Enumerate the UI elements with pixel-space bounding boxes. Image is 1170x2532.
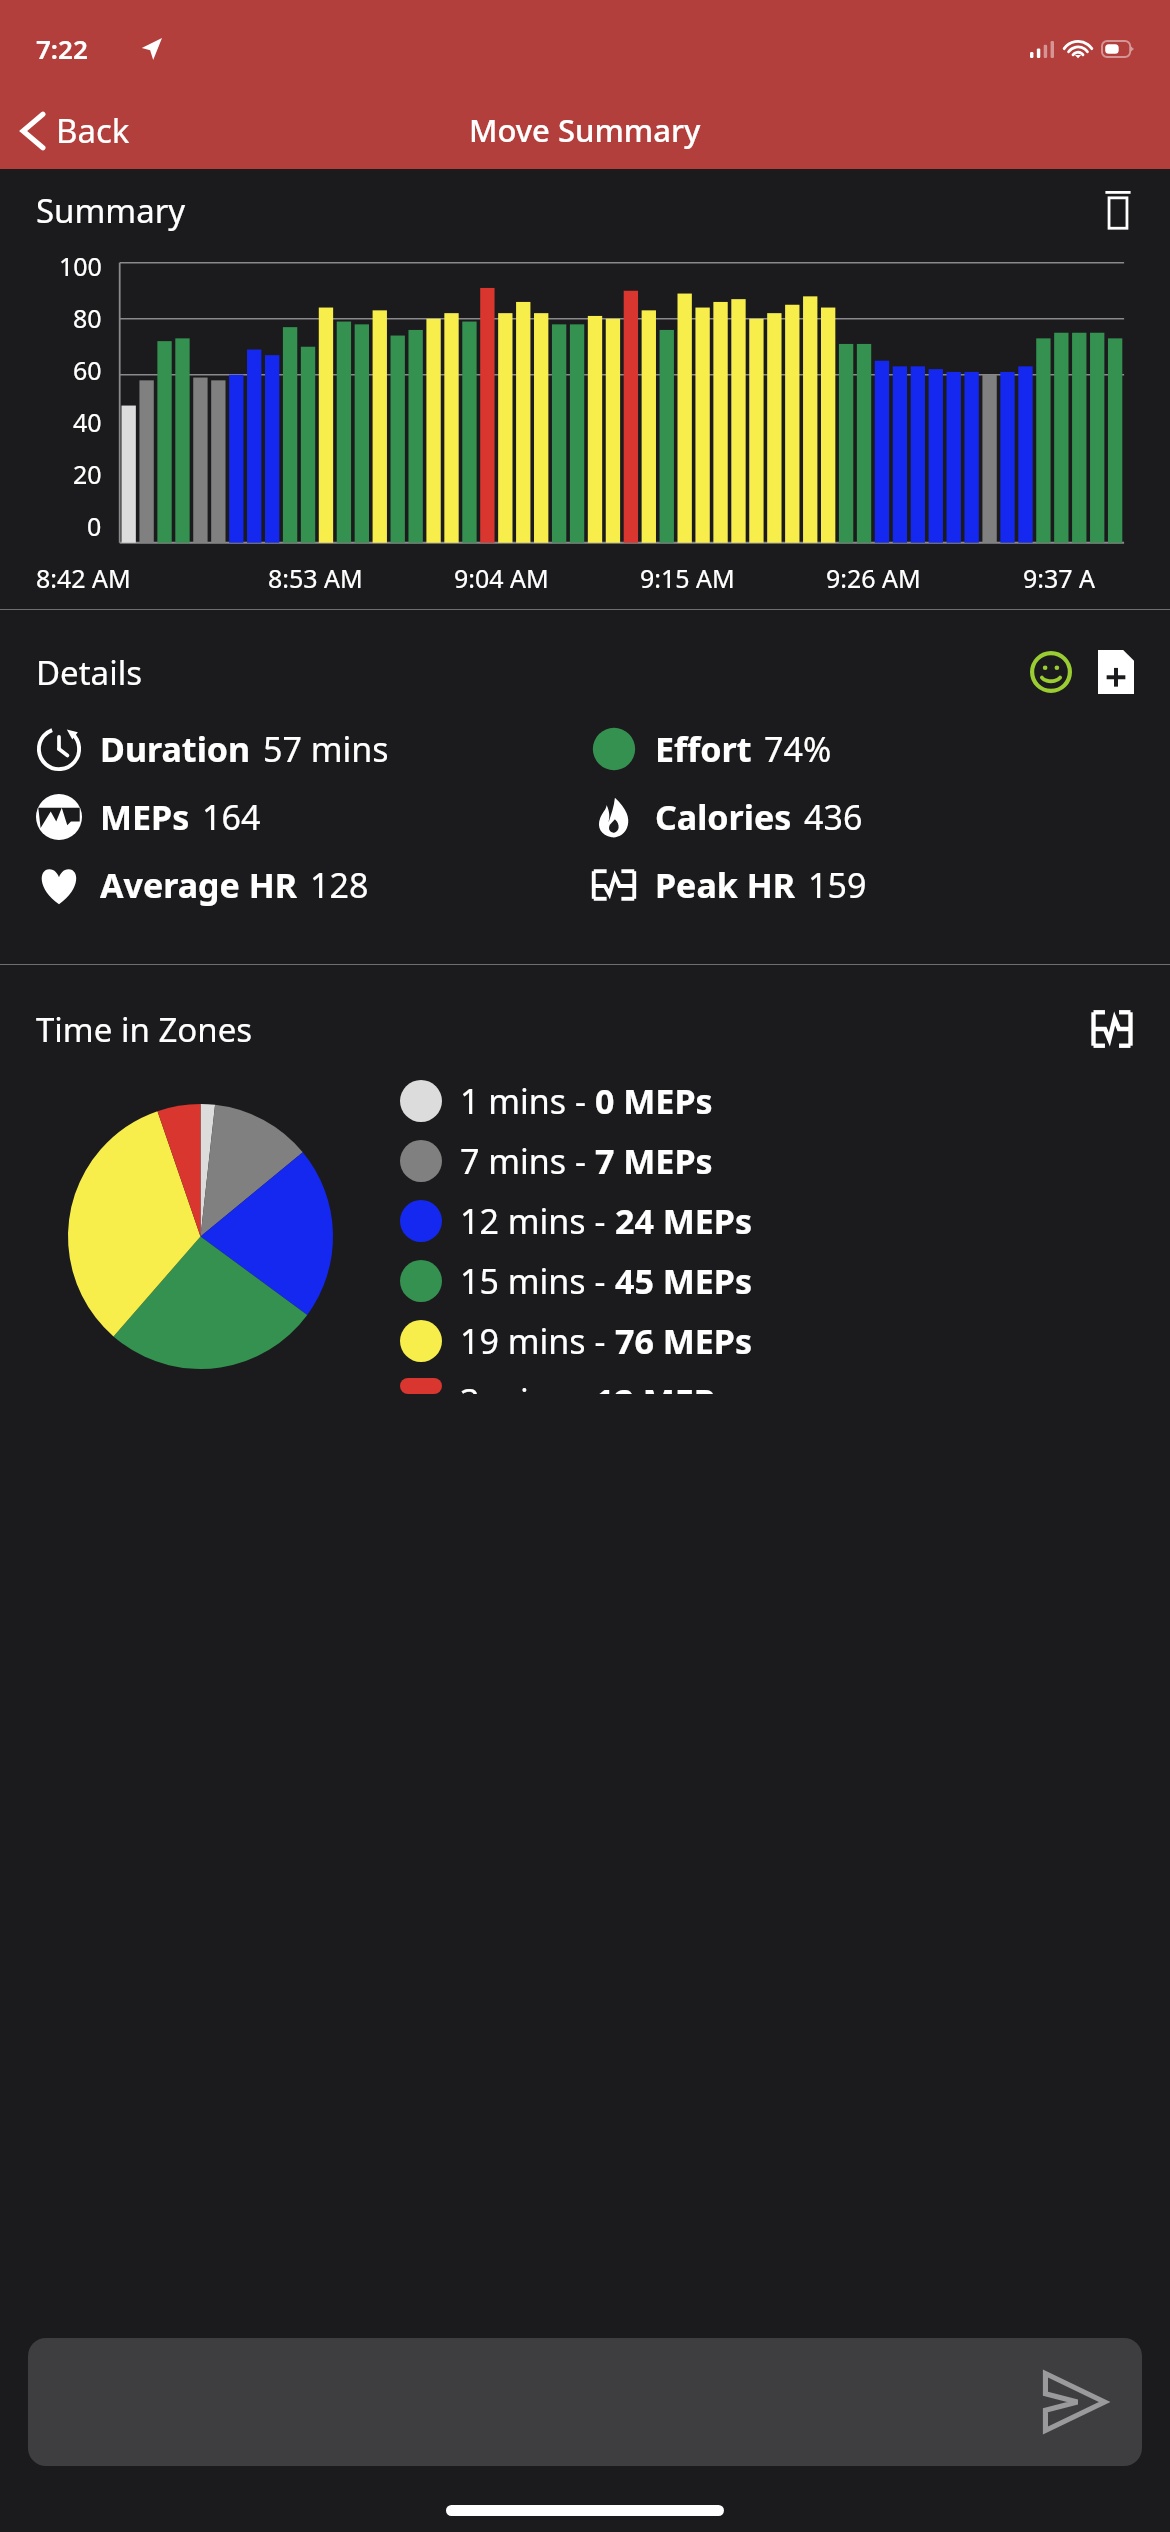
button[interactable]: Duration <box>0 726 585 772</box>
staticText: Back <box>56 108 130 153</box>
staticText: 12 mins - <box>460 1198 615 1244</box>
staticText: Summary <box>36 188 186 233</box>
button[interactable]: Average HR <box>0 862 585 908</box>
staticText: 40 <box>73 405 102 439</box>
staticText: 74% <box>764 726 832 772</box>
staticText: 80 <box>73 301 102 335</box>
staticText: 7 mins - <box>460 1138 595 1184</box>
staticText: 7 MEPs <box>595 1138 713 1184</box>
staticText: 0 MEPs <box>595 1078 713 1124</box>
staticText: MEPs <box>100 794 190 840</box>
button[interactable]: 15 mins - <box>400 1251 1160 1311</box>
staticText: 20 <box>73 457 102 491</box>
staticText: 60 <box>73 353 102 387</box>
staticText: 0 <box>87 509 102 543</box>
button[interactable]: Feeling <box>1024 645 1078 699</box>
staticText: 8:53 AM <box>268 561 363 595</box>
button[interactable]: Peak HR <box>585 862 1170 908</box>
button[interactable]: Chart options <box>1096 183 1140 237</box>
staticText: Peak HR <box>655 862 796 908</box>
staticText: 1 mins - <box>460 1078 595 1124</box>
staticText: Time in Zones <box>36 1007 253 1052</box>
button[interactable]: Calories <box>585 794 1170 840</box>
staticText: Calories <box>655 794 792 840</box>
staticText: 19 mins - <box>460 1318 615 1364</box>
button[interactable]: MEPs <box>0 794 585 840</box>
staticText: 3 mins - <box>460 1378 595 1394</box>
staticText: 15 mins - <box>460 1258 615 1304</box>
button[interactable]: Send <box>28 2338 1142 2466</box>
staticText: 7:22 <box>36 31 88 66</box>
staticText: 8:42 AM <box>36 561 131 595</box>
staticText: 159 <box>808 862 867 908</box>
staticText: 100 <box>59 249 102 283</box>
staticText: Details <box>36 650 142 695</box>
button[interactable]: 12 mins - <box>400 1191 1160 1251</box>
staticText: 128 <box>310 862 369 908</box>
staticText: 45 MEPs <box>615 1258 753 1304</box>
staticText: 436 <box>804 794 863 840</box>
staticText: 12 MEPs <box>595 1378 733 1394</box>
staticText: 9:04 AM <box>454 561 549 595</box>
staticText: Move Summary <box>469 109 701 151</box>
button[interactable]: 1 mins - <box>400 1071 1160 1131</box>
button[interactable]: 3 mins - <box>400 1371 1160 1401</box>
button[interactable]: 7 mins - <box>400 1131 1160 1191</box>
button[interactable]: Add note <box>1092 644 1140 700</box>
staticText: 164 <box>202 794 261 840</box>
button[interactable]: Effort <box>585 726 1170 772</box>
staticText: 24 MEPs <box>615 1198 753 1244</box>
button[interactable]: Back <box>0 100 146 161</box>
staticText: 76 MEPs <box>615 1318 753 1364</box>
staticText: Effort <box>655 726 752 772</box>
staticText: 9:26 AM <box>826 561 921 595</box>
button[interactable]: Send <box>1040 2368 1108 2436</box>
staticText: 57 mins <box>263 726 389 772</box>
staticText: Average HR <box>100 862 298 908</box>
button[interactable]: 19 mins - <box>400 1311 1160 1371</box>
staticText: 9:15 AM <box>640 561 735 595</box>
staticText: 9:37 A <box>1023 561 1096 595</box>
staticText: Duration <box>100 726 251 772</box>
button[interactable]: Heart rate detail <box>1084 1001 1140 1057</box>
